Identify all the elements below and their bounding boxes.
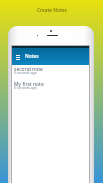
staticText: Notes — [25, 53, 39, 60]
button[interactable]: second note — [12, 65, 89, 80]
button[interactable]: My first note — [12, 80, 89, 95]
staticText: 0 seconds ago — [14, 70, 37, 75]
button[interactable]: Open navigation menu — [16, 54, 20, 60]
button[interactable]: Open navigation menu — [12, 48, 89, 65]
staticText: second note — [14, 66, 43, 73]
staticText: Create Notes — [37, 7, 67, 14]
staticText: My first note — [14, 81, 44, 88]
staticText: 0 seconds ago — [14, 85, 37, 90]
